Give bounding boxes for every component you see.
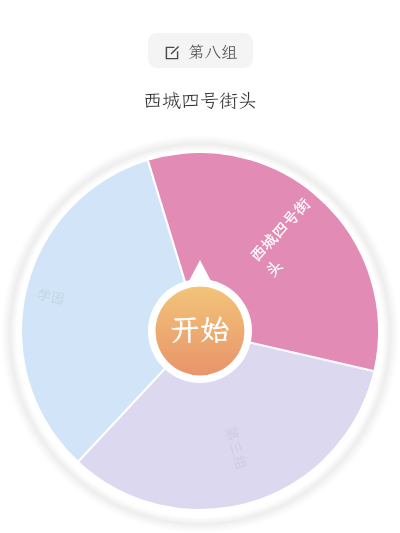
staticText: 西城四号街头 <box>143 87 258 112</box>
button[interactable]: 开始 <box>157 288 243 374</box>
staticText: 第八组 <box>188 41 238 63</box>
button[interactable]: 第八组 <box>148 33 253 68</box>
staticText: 开始 <box>170 309 230 349</box>
